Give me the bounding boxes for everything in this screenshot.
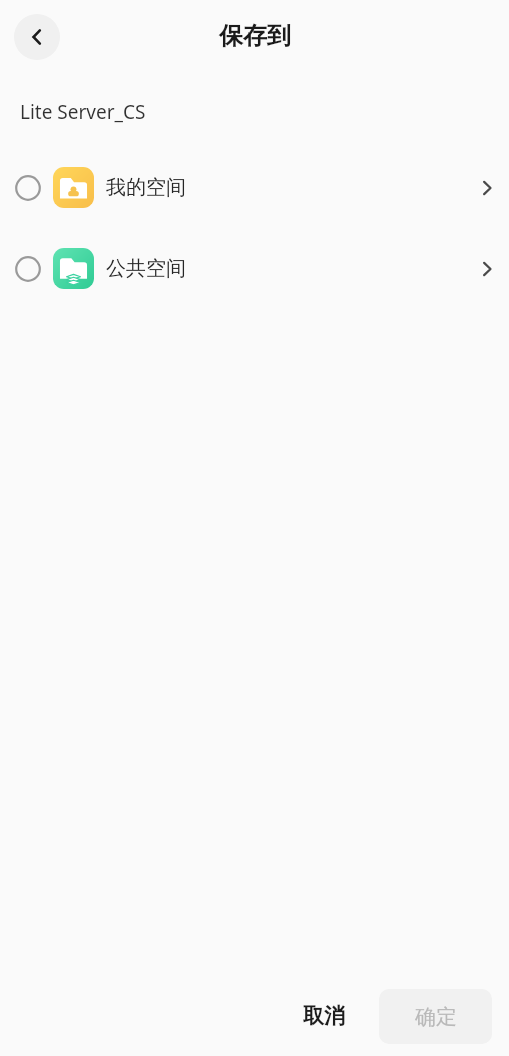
staticText: 取消 xyxy=(303,1003,345,1029)
other: Open xyxy=(476,258,498,280)
button[interactable]: 公共空间 xyxy=(0,228,509,309)
staticText: 公共空间 xyxy=(106,256,186,281)
button[interactable]: 我的空间 xyxy=(0,147,509,228)
button[interactable]: Back xyxy=(14,14,60,60)
staticText: 我的空间 xyxy=(106,175,186,200)
staticText: 确定 xyxy=(415,1004,457,1030)
staticText: Lite Server_CS xyxy=(20,99,146,125)
button[interactable]: 确定 xyxy=(379,989,492,1044)
other: Open xyxy=(476,177,498,199)
button[interactable]: 取消 xyxy=(285,993,363,1039)
staticText: 保存到 xyxy=(219,21,291,51)
